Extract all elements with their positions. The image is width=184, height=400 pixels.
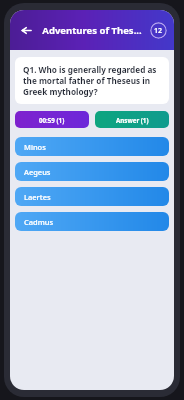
button[interactable]: Laertes <box>15 187 169 206</box>
staticText: Answer (1) <box>116 116 149 124</box>
button[interactable]: 12 <box>150 22 167 39</box>
staticText: Q1. Who is generally regarded as the mor… <box>23 64 161 97</box>
staticText: Minos <box>24 142 46 152</box>
staticText: Adventures of Thes... <box>42 24 142 37</box>
button[interactable]: Minos <box>15 137 169 156</box>
button[interactable]: Cadmus <box>15 212 169 231</box>
staticText: 12 <box>154 26 163 36</box>
staticText: Cadmus <box>24 217 54 227</box>
button[interactable]: Q1. Who is generally regarded as the mor… <box>15 57 169 104</box>
button[interactable]: Aegeus <box>15 162 169 181</box>
staticText: Laertes <box>24 192 51 202</box>
button[interactable]: Answer (1) <box>95 111 169 128</box>
staticText: 00:59 (1) <box>39 116 65 124</box>
staticText: Aegeus <box>24 167 51 177</box>
button[interactable]: 00:59 (1) <box>15 111 89 128</box>
button[interactable]: Back <box>15 19 37 41</box>
